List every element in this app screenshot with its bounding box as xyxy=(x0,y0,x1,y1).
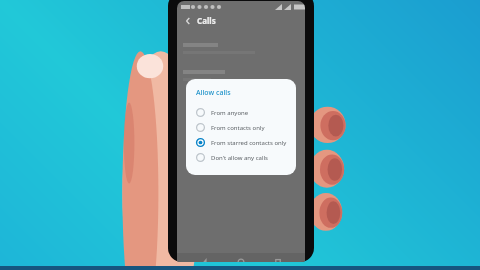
button[interactable]: Home xyxy=(232,253,250,262)
button[interactable]: Back xyxy=(182,15,194,27)
button[interactable]: From anyone xyxy=(196,105,288,120)
button[interactable] xyxy=(177,62,305,89)
staticText: From anyone xyxy=(211,109,249,117)
button[interactable]: Recents xyxy=(269,253,287,262)
staticText: Don't allow any calls xyxy=(211,154,268,162)
button[interactable] xyxy=(177,35,305,62)
staticText: From contacts only xyxy=(211,124,265,132)
staticText: Allow calls xyxy=(196,88,231,98)
staticText: Calls xyxy=(197,15,216,26)
button[interactable]: Don't allow any calls xyxy=(196,150,288,165)
button[interactable]: Back xyxy=(196,253,214,262)
button[interactable]: From starred contacts only xyxy=(196,135,288,150)
staticText: From starred contacts only xyxy=(211,139,287,147)
button[interactable]: From contacts only xyxy=(196,120,288,135)
